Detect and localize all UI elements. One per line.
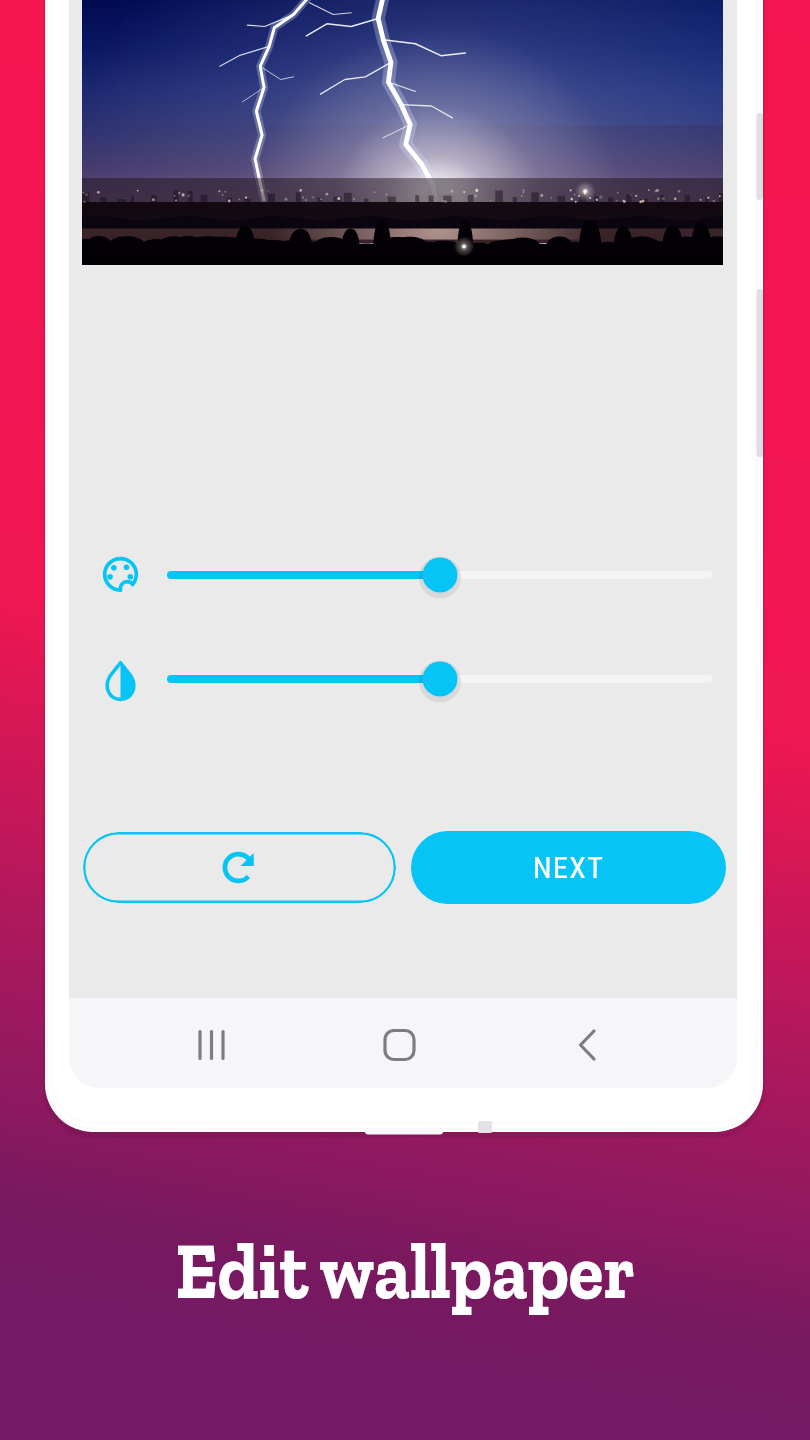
- button[interactable]: [149, 549, 730, 601]
- staticText: NEXT: [533, 850, 605, 885]
- button[interactable]: Back: [514, 998, 737, 1088]
- button[interactable]: Reset: [83, 832, 396, 903]
- button[interactable]: NEXT: [411, 831, 726, 904]
- button[interactable]: [149, 653, 730, 705]
- button[interactable]: Opacity: [94, 653, 146, 705]
- staticText: Edit wallpaper: [43, 1222, 767, 1318]
- button[interactable]: Recents: [69, 998, 291, 1088]
- button[interactable]: Home: [291, 998, 514, 1088]
- button[interactable]: Color: [94, 549, 146, 601]
